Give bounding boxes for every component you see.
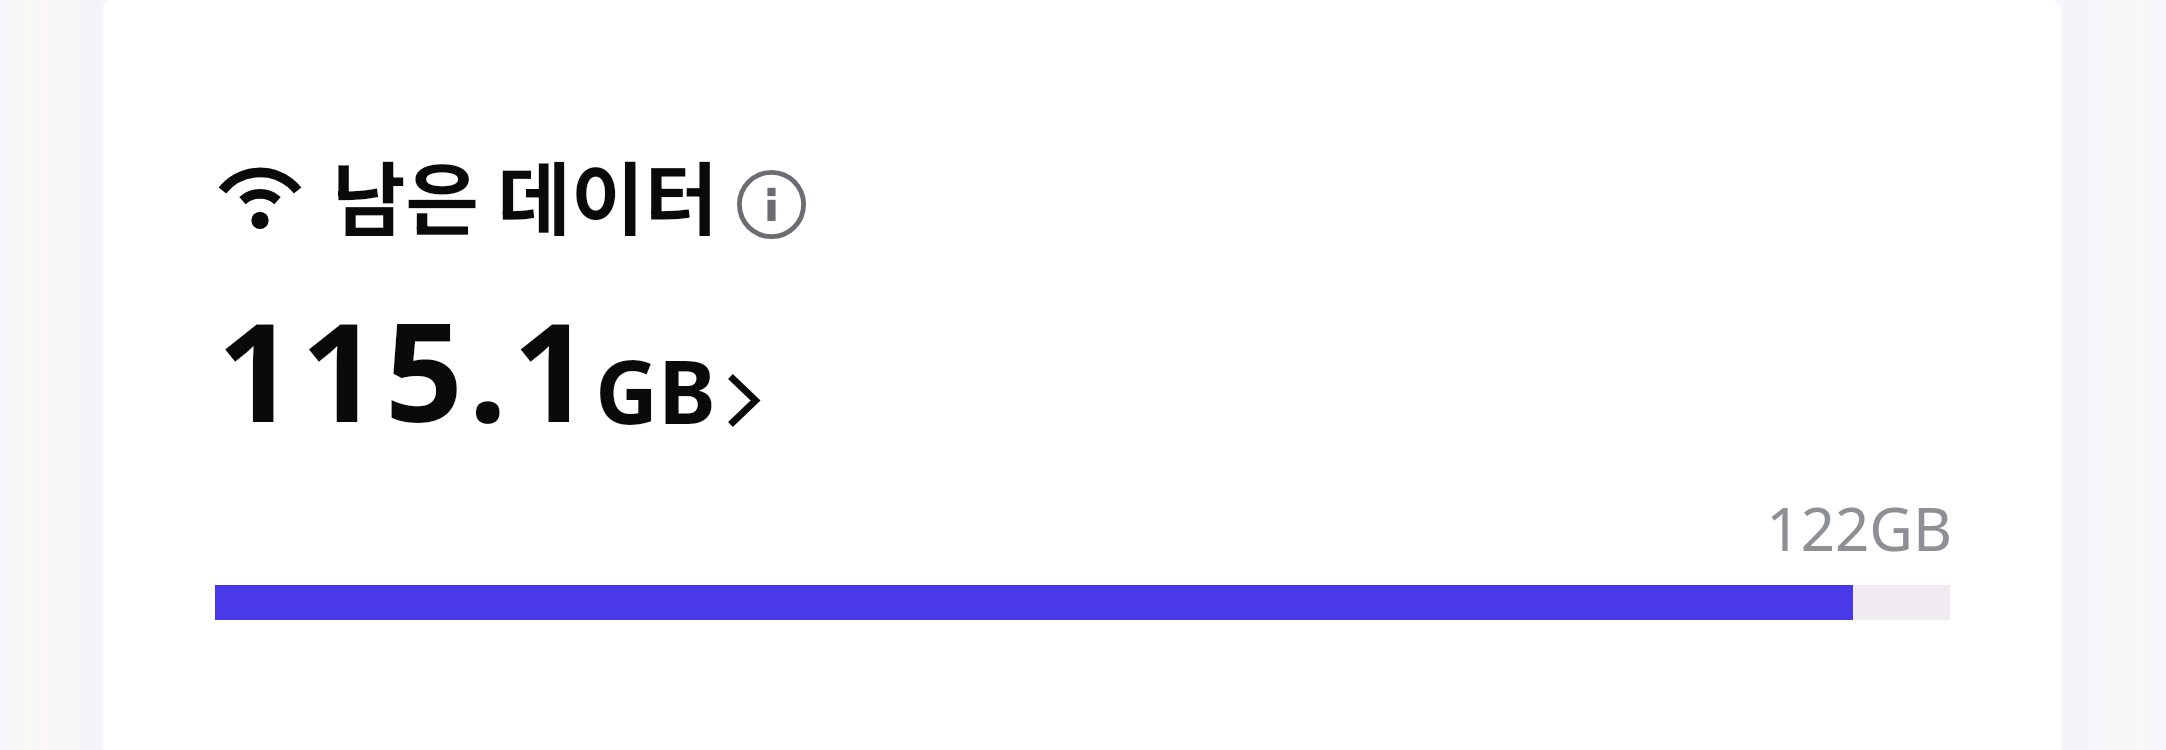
button[interactable]: Information [737,170,806,239]
button[interactable]: 115.1 [213,300,768,460]
button[interactable]: Wi-Fi [213,150,718,250]
staticText: 115.1 [217,276,597,436]
button[interactable]: 115.1 of 122 GB remaining [215,585,1950,620]
staticText: 122GB [1452,487,1952,569]
other: Show data details [727,373,759,428]
staticText: 남은 데이터 [332,136,719,236]
other: Wi-Fi [217,167,303,229]
staticText: GB [595,331,716,449]
